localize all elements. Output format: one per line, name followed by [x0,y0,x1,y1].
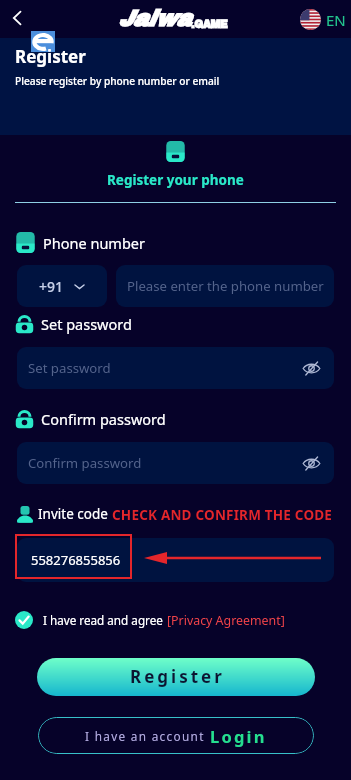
button[interactable]: Please enter the phone number [116,265,334,307]
staticText: Confirm password [28,454,142,472]
staticText: Please register by phone number or email [15,74,220,88]
staticText: Jalwa [118,7,191,31]
staticText: Register [15,45,86,68]
staticText: +91 [39,277,64,296]
staticText: Set password [28,359,111,377]
staticText: Login [210,725,267,747]
button[interactable]: Confirm password [17,442,334,484]
button[interactable]: Set password [17,347,334,389]
button[interactable]: Back [2,4,32,34]
button[interactable]: Register [37,658,315,696]
button[interactable]: +91 [17,265,107,307]
staticText: Please enter the phone number [127,277,324,295]
staticText: I have an account [85,728,205,744]
staticText: Phone number [43,233,145,253]
button[interactable]: Register your phone [107,141,244,189]
staticText: Register [130,665,225,688]
staticText: Confirm password [41,409,166,429]
other: Agree [15,611,33,629]
button[interactable]: Agree [15,611,285,629]
staticText: Invite code [38,505,108,523]
staticText: I have read and agree [43,612,163,628]
button[interactable]: EN [300,9,346,30]
button[interactable]: 558276855856 [17,538,334,582]
staticText: CHECK AND CONFIRM THE CODE [112,506,333,524]
button[interactable]: I have an account [38,717,314,754]
staticText: [Privacy Agreement] [167,612,285,629]
staticText: EN [326,10,346,30]
button[interactable]: Show password [300,452,322,474]
staticText: 558276855856 [31,551,121,569]
staticText: .GAME [191,19,228,30]
button[interactable]: Show password [300,357,322,379]
staticText: Set password [41,314,132,334]
staticText: Register your phone [107,171,244,189]
